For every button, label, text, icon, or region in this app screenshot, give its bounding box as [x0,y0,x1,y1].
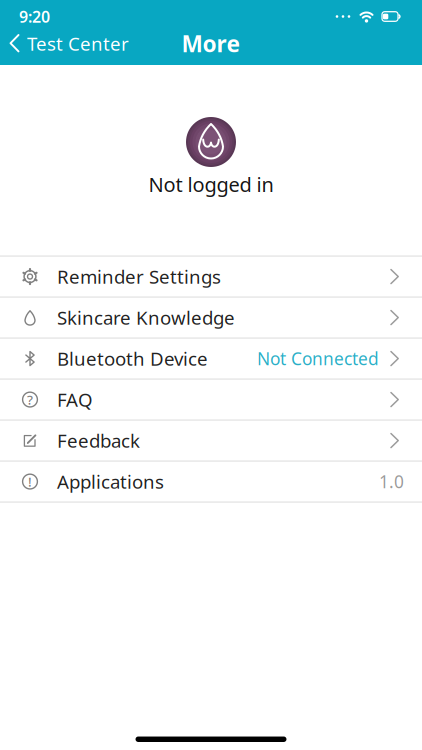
staticText: Applications [57,469,164,494]
button[interactable]: Back [0,31,129,56]
staticText: Feedback [57,428,140,453]
staticText: 9:20 [19,6,50,27]
staticText: ? [27,391,33,408]
button[interactable]: Feedback [0,421,422,461]
staticText: More [181,28,240,58]
staticText: Bluetooth Device [57,346,208,371]
button[interactable]: ! [0,462,422,502]
staticText: FAQ [57,387,93,412]
staticText: Test Center [27,31,129,56]
staticText: Skincare Knowledge [57,305,235,330]
staticText: Reminder Settings [57,264,221,289]
button[interactable]: ? [0,380,422,420]
button[interactable]: Reminder Settings [0,257,422,297]
staticText: Not Connected [257,347,379,370]
button[interactable]: Bluetooth Device [0,339,422,379]
staticText: ! [28,473,32,490]
staticText: 1.0 [379,470,404,493]
button[interactable]: Skincare Knowledge [0,298,422,338]
staticText: Not logged in [148,171,273,198]
